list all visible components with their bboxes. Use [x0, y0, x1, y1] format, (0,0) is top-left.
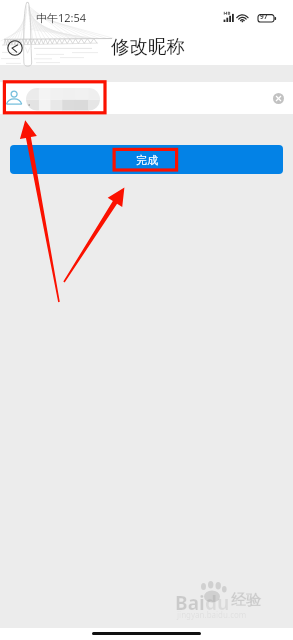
button[interactable]: Clear text [0, 82, 293, 114]
staticText: 中午12:54 [36, 10, 87, 25]
button[interactable]: Clear text [273, 93, 284, 104]
staticText: 完成 [136, 153, 158, 167]
staticText: 97 [260, 12, 268, 21]
staticText: 修改昵称 [111, 35, 185, 58]
staticText: du [205, 590, 230, 616]
button[interactable]: 完成 [10, 145, 283, 174]
staticText: 经验 [231, 591, 261, 610]
staticText: Bai [175, 590, 205, 616]
button[interactable]: Back [7, 40, 23, 56]
staticText: jingyan.baidu.com [177, 609, 247, 620]
